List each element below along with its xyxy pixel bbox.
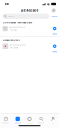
button[interactable]: Search xyxy=(2,14,49,19)
button[interactable]: Browse xyxy=(24,115,35,124)
button[interactable]: Search xyxy=(35,115,47,124)
staticText: Connected Whiteboard xyxy=(3,21,33,24)
staticText: View All xyxy=(52,32,56,35)
button[interactable]: Jan 24, 2024 at 9:41 AM xyxy=(0,25,59,32)
staticText: Search xyxy=(8,15,14,18)
button[interactable]: Me xyxy=(47,115,59,124)
staticText: Jan 17, 2024 at 6:12 PM xyxy=(10,44,25,46)
staticText: Last Accessed xyxy=(20,9,38,12)
button[interactable]: Cancel xyxy=(52,14,57,19)
staticText: HEIC · 3.4 MB xyxy=(10,46,18,49)
staticText: Access Photos xyxy=(3,38,20,41)
button[interactable]: Recents xyxy=(0,115,12,124)
staticText: Browse xyxy=(26,122,32,124)
staticText: Jan 24, 2024 at 9:41 AM xyxy=(10,26,25,28)
button[interactable]: View All xyxy=(52,50,56,53)
button[interactable]: Shared xyxy=(12,115,24,124)
staticText: Shared xyxy=(15,122,21,124)
staticText: Cancel xyxy=(52,15,57,18)
staticText: View All xyxy=(52,50,56,53)
button[interactable]: View All xyxy=(52,32,56,35)
staticText: PDF · 1.2 MB xyxy=(10,29,17,31)
button[interactable]: Jan 17, 2024 at 6:12 PM xyxy=(0,42,59,50)
staticText: Me xyxy=(52,122,54,124)
staticText: Recents xyxy=(2,122,9,124)
staticText: 9:41 xyxy=(5,2,9,6)
button[interactable]: Account xyxy=(51,8,56,13)
